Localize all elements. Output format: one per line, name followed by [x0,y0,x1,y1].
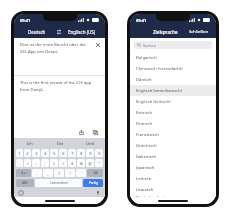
button[interactable]: ? [54,169,64,177]
button[interactable]: Teilen [78,129,85,136]
staticText: Finnisch [136,121,153,127]
button[interactable]: 2 [24,149,31,157]
button[interactable]: 7 [68,149,76,157]
staticText: This is the first review of the iOS app … [20,80,97,92]
button[interactable]: ' [76,169,86,177]
staticText: Englisch (britisch) [136,99,171,105]
button[interactable]: Finnisch [130,118,216,129]
button[interactable]: " [95,159,103,167]
staticText: 09:41 [136,18,147,23]
staticText: Englisch (US) [68,29,96,35]
staticText: 7 [71,151,74,156]
staticText: ABC [22,181,28,185]
button[interactable]: Deutsch [19,26,54,38]
button[interactable]: Niederländisch [130,195,216,197]
staticText: : [35,161,37,166]
button[interactable]: 9 [86,149,94,157]
button[interactable]: 4 [41,149,49,157]
staticText: Deutsch [28,29,46,35]
button[interactable]: / [24,159,31,167]
button[interactable]: Englisch (britisch) [130,96,216,107]
staticText: Französisch [136,132,159,138]
button[interactable]: Diktat [95,190,101,196]
button[interactable]: 3 [32,149,40,157]
button[interactable]: Zielsprache [145,26,185,38]
button[interactable]: Lettisch [130,173,216,184]
button[interactable]: Griechisch [130,140,216,151]
staticText: ) [62,161,64,166]
button[interactable]: Dänisch [130,74,216,85]
button[interactable]: Löschen [94,41,101,48]
button[interactable]: Und [75,139,105,148]
button[interactable]: Kopieren [92,129,99,136]
button[interactable]: ; [41,159,49,167]
button[interactable]: ABC [16,179,34,187]
button[interactable]: 8 [77,149,85,157]
button[interactable]: Litauisch [130,184,216,195]
button[interactable]: , [43,169,53,177]
staticText: Niederländisch [136,195,166,197]
button[interactable]: ) [59,159,67,167]
button[interactable]: Suchen [134,41,212,49]
staticText: / [27,161,29,166]
button[interactable]: ( [50,159,58,167]
staticText: Ich [27,141,33,146]
button[interactable]: 5 [50,149,58,157]
staticText: 5 [53,151,56,156]
staticText: Dies ist der erste Bericht über die iOS-… [20,42,91,54]
button[interactable]: 0 [95,149,103,157]
button[interactable]: #+= [16,169,31,177]
button[interactable]: Ich [14,139,45,148]
button[interactable]: € [68,159,76,167]
button[interactable]: ⌫ [87,169,103,177]
button[interactable]: Sprachen tauschen [54,27,64,37]
staticText: Bulgarisch [136,55,157,61]
staticText: ; [44,161,46,166]
button[interactable]: Englisch (amerikanisch) [130,85,216,96]
button[interactable]: Japanisch [130,162,216,173]
button[interactable]: Französisch [130,129,216,140]
staticText: " [98,161,100,166]
staticText: 09:41 [20,18,31,23]
staticText: Und [86,141,94,146]
button[interactable]: : [32,159,40,167]
button[interactable]: Englisch (US) [64,26,100,38]
staticText: Litauisch [136,187,154,193]
staticText: 3 [35,151,38,156]
staticText: 0 [98,151,101,156]
staticText: € [71,161,74,166]
staticText: Italienisch [136,154,157,160]
staticText: 8 [80,151,83,156]
button[interactable]: & [77,159,85,167]
staticText: #+= [21,171,27,175]
staticText: Suchen [143,43,157,48]
staticText: & [80,161,83,166]
staticText: ( [53,161,55,166]
staticText: @ [88,161,92,166]
staticText: ' [81,171,82,176]
staticText: Dänisch [136,77,152,83]
staticText: Chinesisch (vereinfacht) [136,66,183,72]
button[interactable]: Italienisch [130,151,216,162]
button[interactable]: Leerzeichen [35,179,82,187]
button[interactable]: ! [65,169,75,177]
button[interactable]: - [16,159,23,167]
button[interactable]: Schließen [185,26,212,38]
button[interactable]: 1 [16,149,23,157]
staticText: - [19,161,21,166]
button[interactable]: Fertig [83,179,103,187]
staticText: . [36,171,38,176]
button[interactable]: Bulgarisch [130,52,216,63]
button[interactable]: . [32,169,42,177]
staticText: Schließen [189,29,209,35]
staticText: , [47,171,49,176]
staticText: ⌫ [93,171,98,175]
button[interactable]: Estnisch [130,107,216,118]
staticText: ? [58,171,60,176]
button[interactable]: Die [45,139,75,148]
button[interactable]: @ [86,159,94,167]
button[interactable]: 6 [59,149,67,157]
button[interactable]: Emoji [18,190,24,196]
staticText: Japanisch [136,165,155,171]
button[interactable]: Chinesisch (vereinfacht) [130,63,216,74]
